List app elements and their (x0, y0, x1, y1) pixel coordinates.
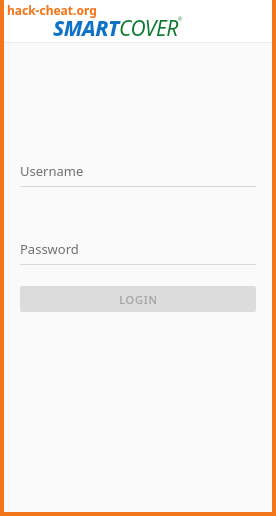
staticText: Username (20, 162, 84, 180)
staticText: COVER (119, 14, 178, 43)
staticText: hack-cheat.org (7, 2, 97, 18)
staticText: Password (20, 240, 79, 258)
button[interactable]: LOGIN (20, 286, 256, 312)
staticText: SMART (53, 14, 119, 43)
staticText: ® (178, 16, 183, 23)
button[interactable]: Password (4, 240, 272, 265)
staticText: LOGIN (119, 292, 158, 307)
button[interactable]: Username (4, 162, 272, 187)
